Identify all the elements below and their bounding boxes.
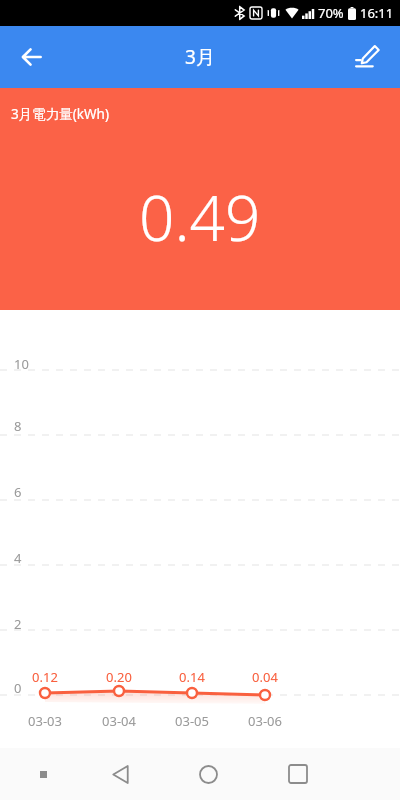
staticText: 10 [14, 355, 29, 373]
staticText: 3月電力量(kWh) [11, 105, 109, 123]
staticText: 0.12 [32, 668, 58, 686]
staticText: 2 [14, 615, 22, 633]
staticText: 4 [14, 549, 22, 567]
staticText: 0.20 [106, 668, 132, 686]
staticText: 03-06 [248, 712, 282, 730]
button[interactable]: Back [6, 31, 58, 83]
staticText: 0.14 [179, 668, 205, 686]
button[interactable]: Recents [253, 748, 342, 800]
staticText: 0 [14, 679, 22, 697]
staticText: 0.04 [252, 668, 278, 686]
button[interactable]: Back [76, 748, 164, 800]
button[interactable]: Home [164, 748, 253, 800]
staticText: 6 [14, 483, 22, 501]
staticText: 03-05 [175, 712, 209, 730]
staticText: 3月 [185, 44, 215, 70]
staticText: 03-04 [102, 712, 136, 730]
staticText: 16:11 [360, 4, 394, 22]
staticText: 8 [14, 417, 22, 435]
button[interactable]: Menu [10, 748, 76, 800]
staticText: 03-03 [28, 712, 62, 730]
button[interactable]: Edit [342, 32, 392, 82]
staticText: 70% [318, 4, 344, 22]
staticText: 0.49 [139, 175, 261, 259]
